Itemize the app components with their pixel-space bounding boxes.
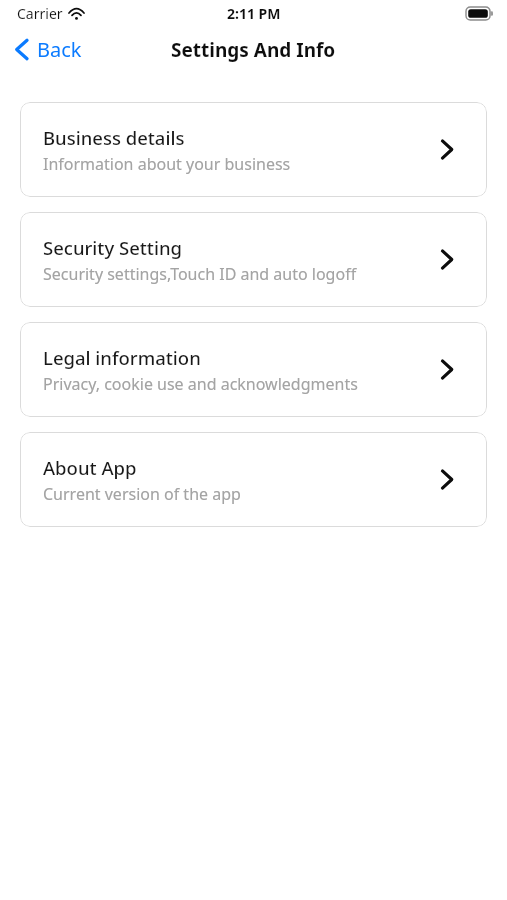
staticText: About App	[43, 455, 137, 480]
button[interactable]: Security Setting	[20, 212, 487, 307]
staticText: Privacy, cookie use and acknowledgments	[43, 373, 358, 395]
button[interactable]: About App	[20, 432, 487, 527]
button[interactable]: Legal information	[20, 322, 487, 417]
staticText: Back	[37, 36, 82, 63]
staticText: Legal information	[43, 345, 201, 370]
staticText: Current version of the app	[43, 483, 241, 505]
staticText: Settings And Info	[171, 37, 336, 63]
staticText: Carrier	[17, 4, 63, 23]
button[interactable]: Business details	[20, 102, 487, 197]
staticText: 2:11 PM	[227, 4, 281, 23]
staticText: Business details	[43, 125, 185, 150]
button[interactable]: Back	[0, 30, 92, 69]
staticText: Information about your business	[43, 153, 291, 175]
staticText: Security settings,Touch ID and auto logo…	[43, 263, 357, 285]
staticText: Security Setting	[43, 235, 182, 260]
